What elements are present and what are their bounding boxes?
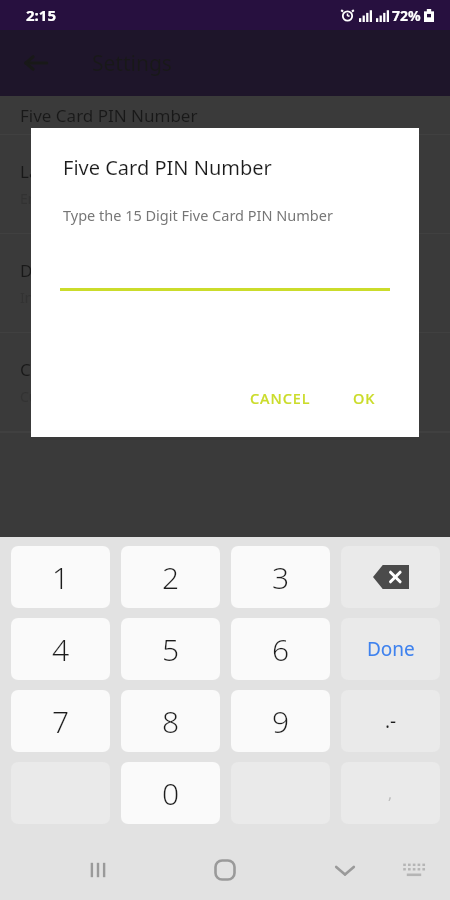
staticText: 9 xyxy=(272,701,290,742)
staticText: Language xyxy=(20,160,100,183)
button[interactable]: 0 xyxy=(121,762,220,824)
staticText: English xyxy=(20,189,68,208)
staticText: , xyxy=(388,783,393,803)
button[interactable]: Language xyxy=(0,135,450,233)
staticText: Device ID xyxy=(20,259,96,282)
staticText: CANCEL xyxy=(250,388,311,408)
staticText: 6 xyxy=(272,629,290,670)
button[interactable]: 1 xyxy=(11,546,110,608)
staticText: 72% xyxy=(392,6,421,25)
button[interactable]: OK xyxy=(344,381,385,415)
staticText: Five Card PIN Number xyxy=(20,104,198,127)
staticText: 4 xyxy=(52,629,70,670)
staticText: Internal identifier xyxy=(20,288,136,307)
button[interactable]: 4 xyxy=(11,618,110,680)
staticText: 1 xyxy=(52,557,70,598)
staticText: 5 xyxy=(162,629,180,670)
staticText: Done xyxy=(367,636,415,662)
button[interactable]: Device ID xyxy=(0,234,450,332)
button[interactable]: 3 xyxy=(231,546,330,608)
button[interactable]: Change keyboard xyxy=(396,852,432,888)
button[interactable]: Five Card PIN Number xyxy=(0,96,450,134)
other: Back xyxy=(24,51,48,75)
staticText: OK xyxy=(353,388,376,408)
button[interactable]: Home xyxy=(201,846,249,894)
staticText: Type the 15 Digit Five Card PIN Number xyxy=(63,205,333,225)
staticText: 3 xyxy=(272,557,290,598)
staticText: 8 xyxy=(162,701,180,742)
button[interactable]: Recents xyxy=(76,848,120,892)
button[interactable]: Backspace xyxy=(341,546,440,608)
button[interactable]: Contact xyxy=(0,333,450,431)
button[interactable]: 2 xyxy=(121,546,220,608)
staticText: Customer support xyxy=(20,387,141,406)
staticText: 2:15 xyxy=(26,5,56,25)
staticText: Five Card PIN Number xyxy=(63,154,272,181)
staticText: Settings xyxy=(92,49,172,78)
staticText: 2 xyxy=(162,557,180,598)
button[interactable]: 5 xyxy=(121,618,220,680)
button[interactable]: .- xyxy=(341,690,440,752)
button[interactable]: 9 xyxy=(231,690,330,752)
staticText: Contact xyxy=(20,358,82,381)
staticText: 0 xyxy=(162,773,180,814)
button[interactable]: 8 xyxy=(121,690,220,752)
button[interactable]: Done xyxy=(341,618,440,680)
button[interactable]: CANCEL xyxy=(241,381,320,415)
button[interactable]: 7 xyxy=(11,690,110,752)
button[interactable]: Hide keyboard xyxy=(323,848,367,892)
staticText: 7 xyxy=(52,701,70,742)
button[interactable]: 6 xyxy=(231,618,330,680)
staticText: .- xyxy=(385,708,397,734)
